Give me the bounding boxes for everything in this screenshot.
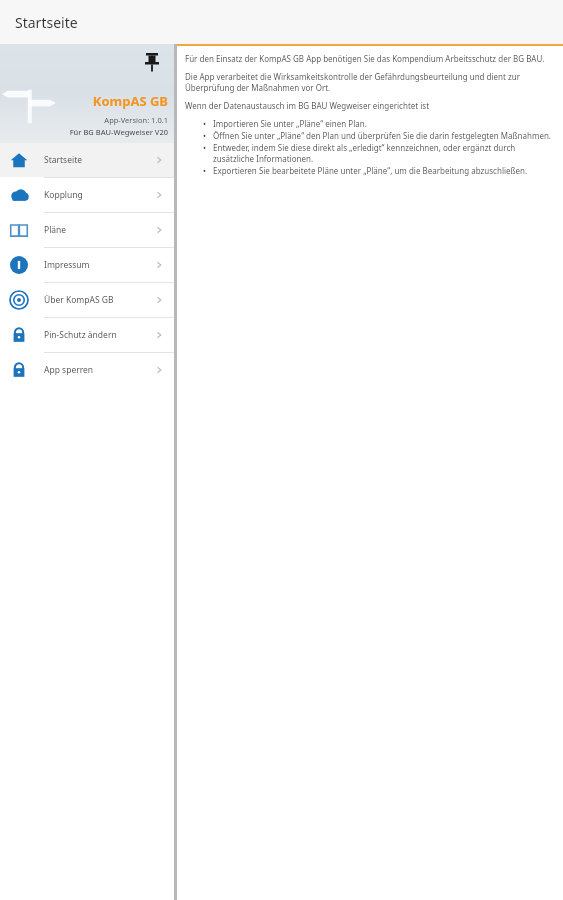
staticText: Für BG BAU-Wegweiser V20 xyxy=(69,127,168,137)
staticText: Exportieren Sie bearbeitete Pläne unter … xyxy=(213,165,528,176)
button[interactable]: Über KompAS GB xyxy=(0,283,174,317)
staticText: Pläne xyxy=(44,224,67,236)
button[interactable]: Anheften xyxy=(142,50,162,70)
staticText: • xyxy=(203,142,207,153)
staticText: Impressum xyxy=(44,259,90,271)
staticText: Importieren Sie unter „Pläne“ einen Plan… xyxy=(213,118,367,129)
staticText: App-Version: 1.0.1 xyxy=(104,115,168,125)
staticText: • xyxy=(203,165,207,176)
button[interactable]: App sperren xyxy=(0,353,174,387)
button[interactable]: Startseite xyxy=(0,143,174,177)
staticText: Die App verarbeitet die Wirksamkeitskont… xyxy=(185,71,553,93)
staticText: Entweder, indem Sie diese direkt als „er… xyxy=(213,142,553,164)
staticText: Startseite xyxy=(44,154,83,166)
button[interactable]: Impressum xyxy=(0,248,174,282)
staticText: Wenn der Datenaustausch im BG BAU Wegwei… xyxy=(185,100,430,111)
staticText: Startseite xyxy=(15,13,78,32)
staticText: Über KompAS GB xyxy=(44,294,114,306)
button[interactable]: Kopplung xyxy=(0,178,174,212)
staticText: Kopplung xyxy=(44,189,83,201)
staticText: • xyxy=(203,118,207,129)
staticText: Für den Einsatz der KompAS GB App benöti… xyxy=(185,53,545,64)
button[interactable]: Pläne xyxy=(0,213,174,247)
button[interactable]: Pin-Schutz ändern xyxy=(0,318,174,352)
staticText: Pin-Schutz ändern xyxy=(44,329,117,341)
staticText: KompAS GB xyxy=(92,92,168,110)
staticText: App sperren xyxy=(44,364,94,376)
staticText: Öffnen Sie unter „Pläne“ den Plan und üb… xyxy=(213,130,551,141)
staticText: • xyxy=(203,130,207,141)
